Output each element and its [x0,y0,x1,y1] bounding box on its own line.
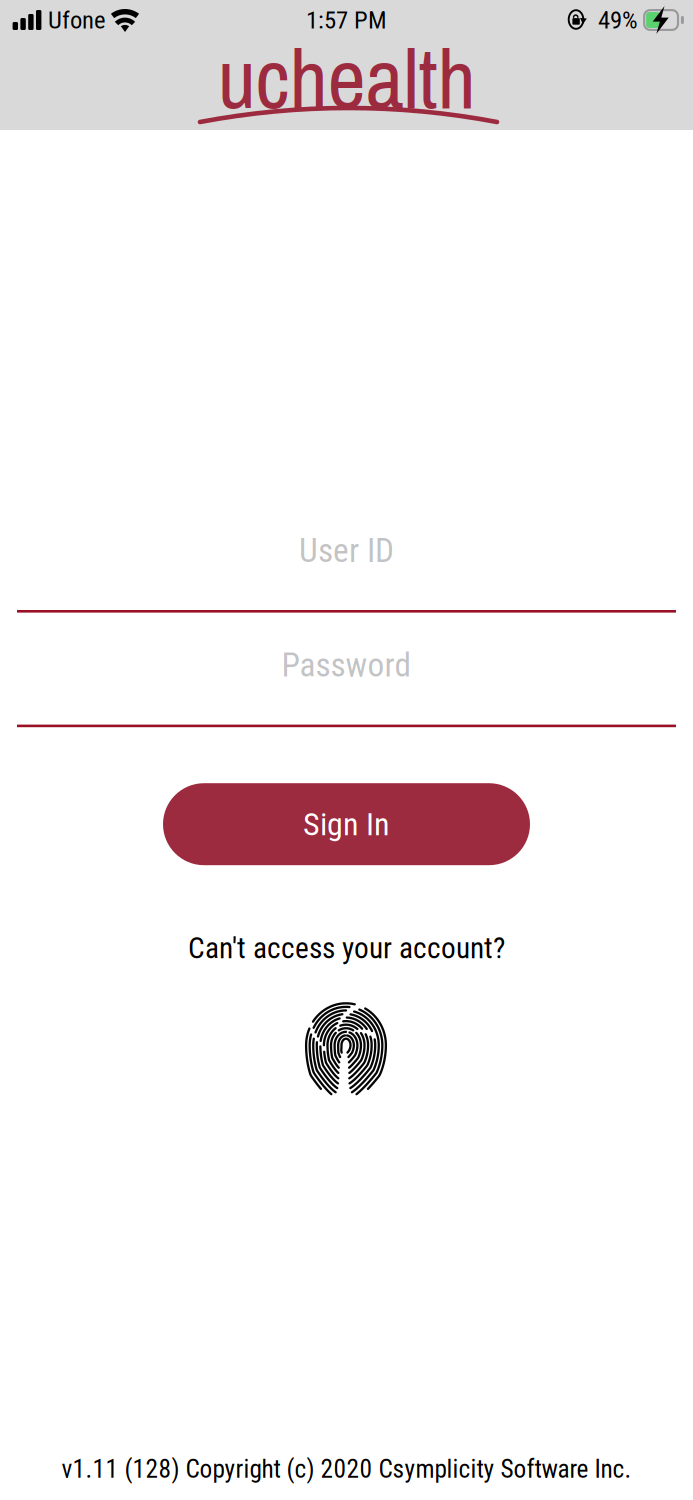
button[interactable]: Can't access your account? [188,930,505,966]
staticText: Ufone [48,5,106,34]
staticText: uchealth [217,21,475,134]
staticText: Can't access your account? [188,931,505,965]
staticText: User ID [299,531,394,570]
staticText: Sign In [303,805,390,843]
staticText: 1:57 PM [306,5,387,34]
staticText: Password [281,646,411,685]
button[interactable]: Sign in with Touch ID [306,1002,387,1101]
staticText: v1.11 (128) Copyright (c) 2020 Csymplici… [61,1454,631,1484]
staticText: 49% [598,5,638,34]
button[interactable]: Sign In [163,783,530,865]
